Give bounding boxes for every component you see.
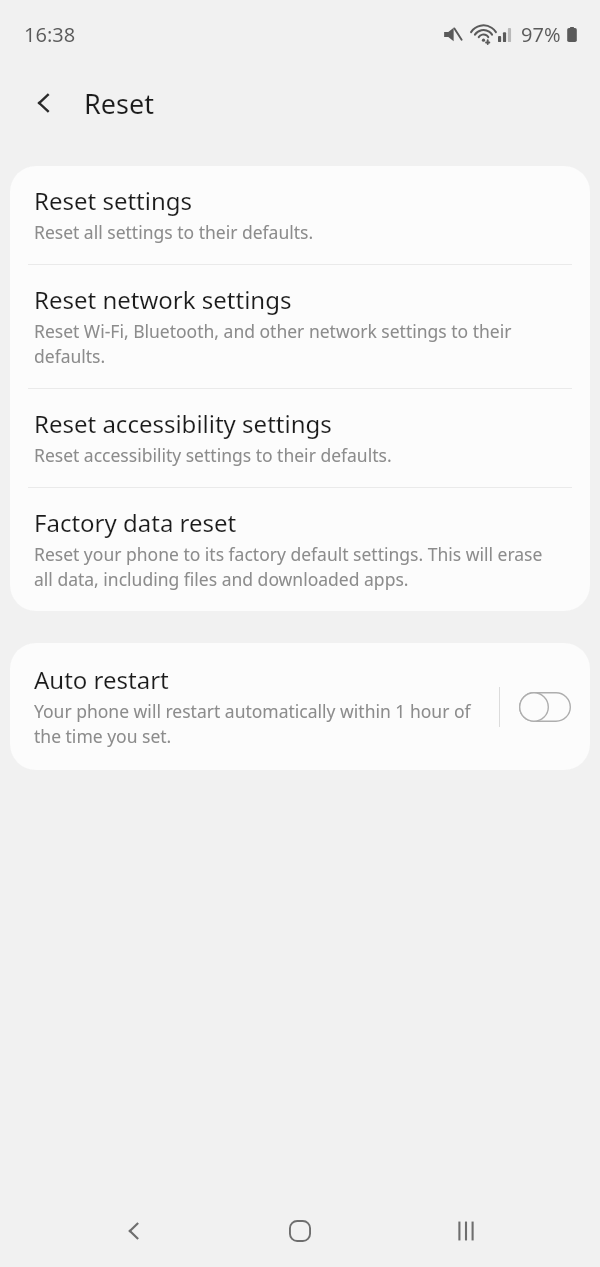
button[interactable]: Auto restart toggle, off xyxy=(516,685,574,729)
button[interactable]: Recent apps xyxy=(434,1199,498,1263)
button[interactable]: Reset settings xyxy=(10,166,590,264)
button[interactable]: Back xyxy=(102,1199,166,1263)
staticText: Reset accessibility settings xyxy=(34,409,332,439)
button[interactable]: Factory data reset xyxy=(10,488,590,611)
staticText: Reset Wi-Fi, Bluetooth, and other networ… xyxy=(34,318,564,368)
staticText: Auto restart xyxy=(34,665,169,695)
button[interactable]: Reset accessibility settings xyxy=(10,389,590,487)
staticText: 97% xyxy=(521,21,561,48)
button[interactable]: Home xyxy=(268,1199,332,1263)
staticText: Reset settings xyxy=(34,186,193,216)
staticText: Reset your phone to its factory default … xyxy=(34,541,564,591)
staticText: Reset network settings xyxy=(34,285,292,315)
staticText: Reset xyxy=(84,85,154,122)
staticText: Factory data reset xyxy=(34,508,237,538)
button[interactable]: Navigate up xyxy=(22,81,66,125)
staticText: Your phone will restart automatically wi… xyxy=(34,698,491,748)
button[interactable]: Auto restart xyxy=(10,643,590,770)
staticText: Reset all settings to their defaults. xyxy=(34,219,314,244)
staticText: 16:38 xyxy=(24,21,76,48)
staticText: Reset accessibility settings to their de… xyxy=(34,442,392,467)
button[interactable]: Reset network settings xyxy=(10,265,590,388)
